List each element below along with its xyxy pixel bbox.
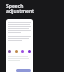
button[interactable]: Voice bbox=[21, 50, 24, 53]
button[interactable]: Voice bbox=[15, 50, 18, 53]
staticText: Speech adjustment bbox=[6, 3, 35, 15]
button[interactable]: Voice bbox=[28, 50, 31, 53]
button[interactable]: Voice bbox=[8, 50, 11, 53]
button[interactable] bbox=[16, 69, 31, 72]
